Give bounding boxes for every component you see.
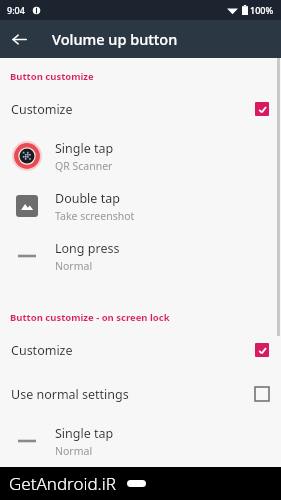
staticText: Normal xyxy=(55,444,93,458)
staticText: Double tap xyxy=(55,467,120,484)
staticText: Double tap xyxy=(55,190,120,207)
staticText: No action xyxy=(55,486,103,500)
button[interactable]: Double tap xyxy=(0,181,281,231)
button[interactable]: Long press xyxy=(0,231,281,281)
staticText: Single tap xyxy=(55,140,114,157)
staticText: 100% xyxy=(250,4,274,16)
staticText: Normal xyxy=(55,259,93,273)
staticText: GetAndroid.iR xyxy=(9,472,116,495)
staticText: Volume up button xyxy=(52,29,178,49)
staticText: Take screenshot xyxy=(55,209,135,223)
staticText: 9:04 xyxy=(7,4,25,16)
staticText: Use normal settings xyxy=(11,386,129,403)
button[interactable]: Single tap xyxy=(0,416,281,466)
staticText: Customize xyxy=(11,342,73,359)
button[interactable]: Customize xyxy=(0,87,281,131)
staticText: QR Scanner xyxy=(55,159,113,173)
staticText: Single tap xyxy=(55,425,114,442)
staticText: Button customize xyxy=(10,70,94,83)
button[interactable]: Customize xyxy=(0,328,281,372)
staticText: Long press xyxy=(55,240,120,257)
button[interactable]: Use normal settings xyxy=(0,372,281,416)
staticText: Button customize - on screen lock xyxy=(10,311,170,324)
button[interactable]: Single tap xyxy=(0,131,281,181)
staticText: Customize xyxy=(11,101,73,118)
button[interactable]: Double tap xyxy=(0,466,281,500)
button[interactable]: Back xyxy=(0,20,38,58)
